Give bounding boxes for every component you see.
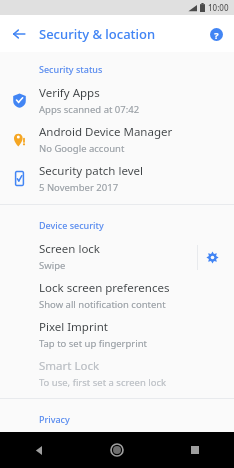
staticText: Swipe <box>39 259 66 272</box>
staticText: Security patch level <box>39 163 143 179</box>
button[interactable]: Security patch level <box>0 159 234 198</box>
button[interactable]: Back <box>0 432 78 468</box>
staticText: Screen lock <box>39 241 101 257</box>
button[interactable]: Verify Apps <box>0 81 234 120</box>
button[interactable]: Android Device Manager <box>0 120 234 159</box>
button[interactable]: Lock screen preferences <box>0 276 234 315</box>
staticText: Show all notification content <box>39 298 166 311</box>
staticText: Tap to set up fingerprint <box>39 337 148 350</box>
staticText: To use, first set a screen lock <box>39 376 167 389</box>
staticText: Lock screen preferences <box>39 280 170 296</box>
staticText: Security status <box>39 63 103 75</box>
button[interactable]: Screen lock settings <box>198 243 226 271</box>
staticText: Privacy <box>39 413 70 425</box>
button[interactable]: Screen lock <box>0 237 234 276</box>
button[interactable]: Pixel Imprint <box>0 315 234 354</box>
button[interactable]: Recent apps <box>156 432 234 468</box>
button[interactable]: Help <box>205 23 227 45</box>
button[interactable]: Smart Lock <box>0 354 234 393</box>
button[interactable]: Home <box>78 432 156 468</box>
staticText: ? <box>214 29 219 41</box>
staticText: Android Device Manager <box>39 124 173 140</box>
staticText: Pixel Imprint <box>39 319 108 335</box>
staticText: Smart Lock <box>39 358 100 374</box>
staticText: No Google account <box>39 142 125 155</box>
staticText: 10:00 <box>208 2 229 13</box>
staticText: Device security <box>39 219 104 231</box>
staticText: Security & location <box>39 25 156 43</box>
button[interactable]: Back <box>6 21 32 47</box>
staticText: Verify Apps <box>39 85 100 101</box>
staticText: Apps scanned at 07:42 <box>39 103 140 116</box>
staticText: 5 November 2017 <box>39 181 119 194</box>
